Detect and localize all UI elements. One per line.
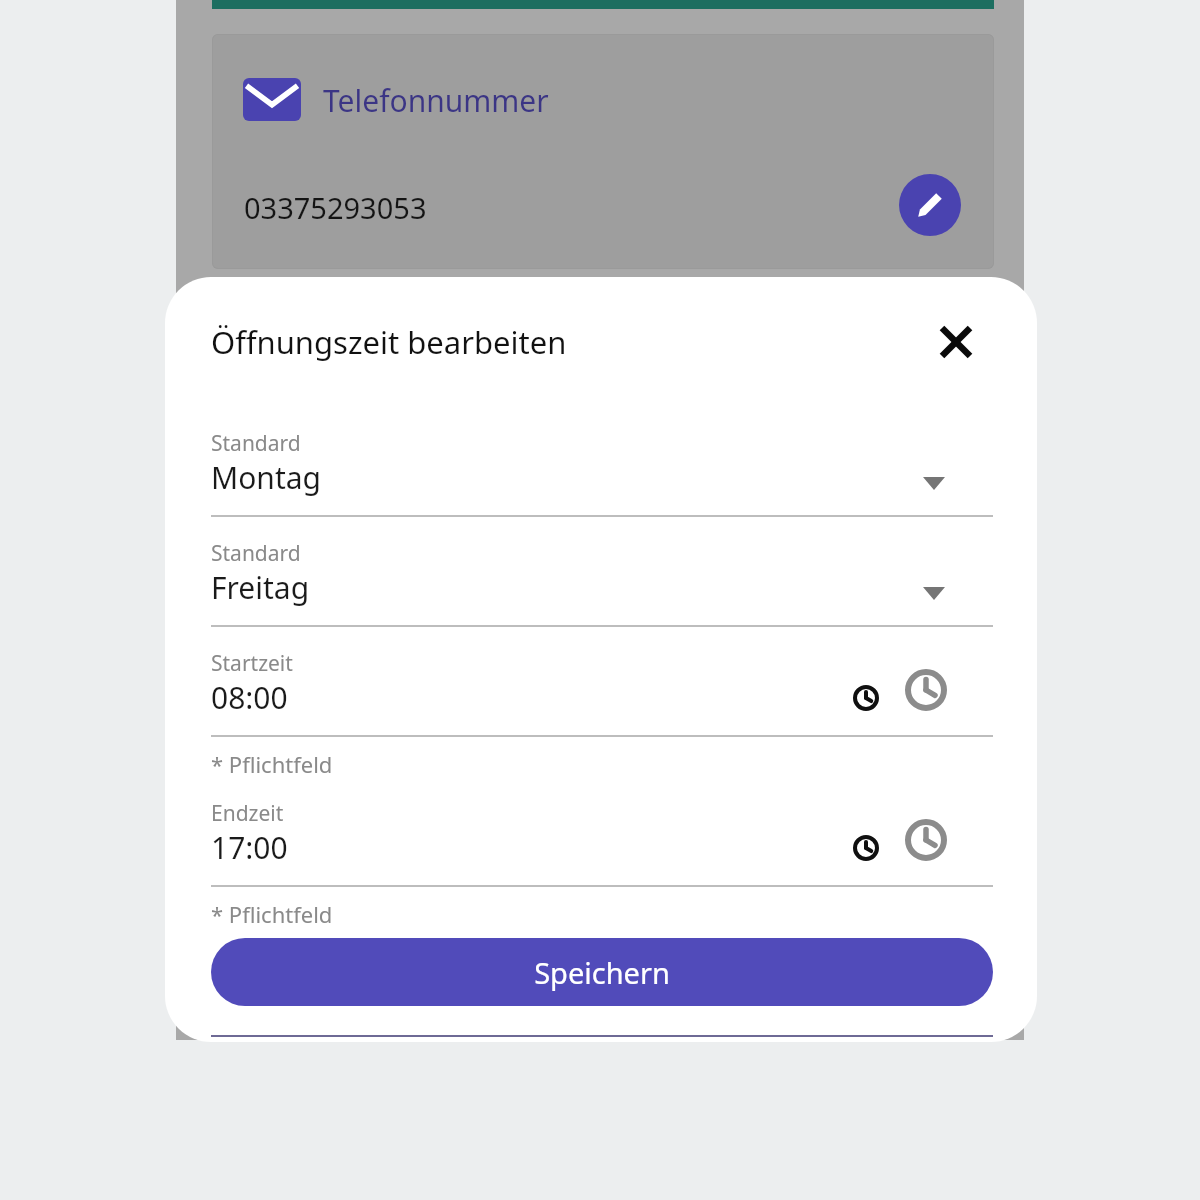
button[interactable]: Bearbeiten xyxy=(899,174,961,236)
button[interactable]: Endzeit xyxy=(211,799,993,889)
button[interactable]: Schließen xyxy=(925,311,987,373)
button[interactable]: Speichern xyxy=(211,938,993,1006)
staticText: Standard xyxy=(211,539,301,568)
staticText: 03375293053 xyxy=(244,188,427,227)
staticText: Telefonnummer xyxy=(323,80,549,121)
button[interactable]: Standard xyxy=(211,539,993,629)
staticText: 17:00 xyxy=(211,827,288,868)
button[interactable]: Standard xyxy=(211,429,993,519)
staticText: Standard xyxy=(211,429,301,458)
other: Uhrzeit auswählen xyxy=(905,669,947,711)
staticText: * Pflichtfeld xyxy=(211,749,333,779)
staticText: * Pflichtfeld xyxy=(211,899,333,929)
staticText: Montag xyxy=(211,457,322,498)
staticText: Speichern xyxy=(534,953,670,992)
other: Zeit wählen xyxy=(853,835,879,861)
staticText: Endzeit xyxy=(211,799,284,828)
other: Uhrzeit auswählen xyxy=(905,819,947,861)
staticText: Freitag xyxy=(211,567,310,608)
staticText: Startzeit xyxy=(211,649,293,678)
staticText: Öffnungszeit bearbeiten xyxy=(211,321,567,363)
button[interactable]: Startzeit xyxy=(211,649,993,739)
staticText: 08:00 xyxy=(211,677,288,718)
other: Zeit wählen xyxy=(853,685,879,711)
